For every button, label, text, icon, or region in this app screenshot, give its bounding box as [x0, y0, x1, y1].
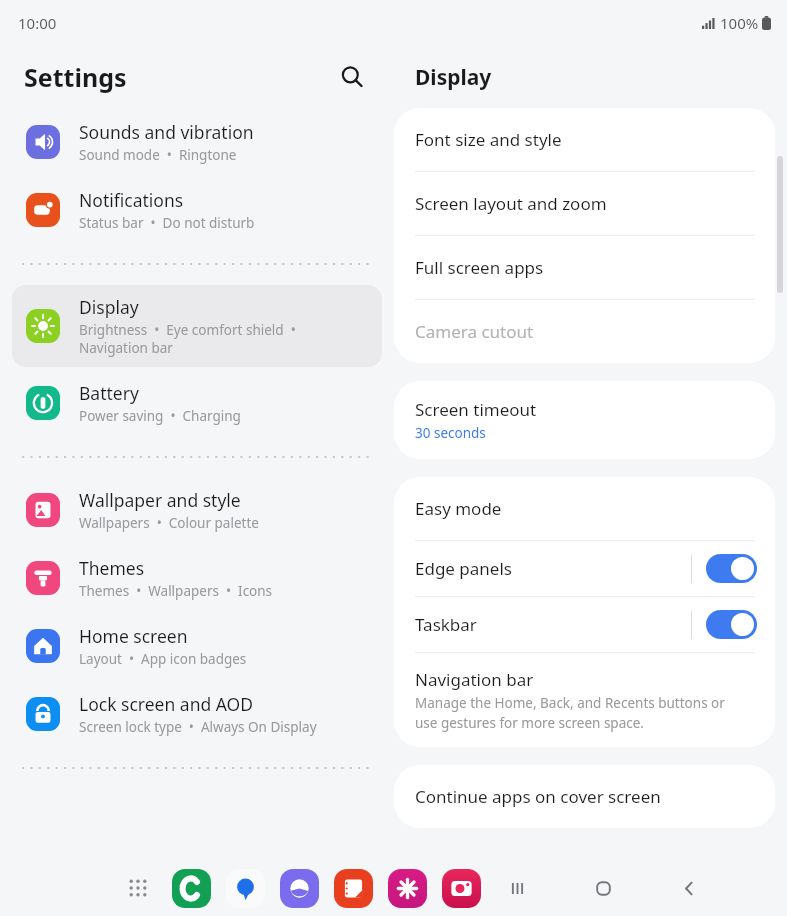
staticText: Battery: [79, 381, 139, 405]
staticText: Screen lock type • Always On Display: [79, 718, 317, 736]
staticText: Screen layout and zoom: [415, 192, 607, 215]
button[interactable]: Continue apps on cover screen: [394, 765, 775, 828]
button[interactable]: Camera: [442, 869, 481, 908]
staticText: Power saving • Charging: [79, 407, 241, 425]
staticText: Brightness • Eye comfort shield • Naviga…: [79, 321, 296, 357]
staticText: Navigation bar: [415, 668, 534, 691]
staticText: Edge panels: [415, 557, 691, 580]
button[interactable]: Edge panels toggle: [706, 554, 757, 583]
button[interactable]: Recents: [495, 866, 539, 910]
button[interactable]: Screen layout and zoom: [394, 172, 775, 235]
staticText: Home screen: [79, 624, 188, 648]
button[interactable]: Apps: [118, 868, 158, 908]
button[interactable]: Search: [332, 57, 372, 97]
button[interactable]: Taskbar: [394, 597, 775, 652]
button[interactable]: Taskbar toggle: [706, 610, 757, 639]
staticText: Sounds and vibration: [79, 120, 254, 144]
button[interactable]: Notes: [334, 869, 373, 908]
staticText: Status bar • Do not disturb: [79, 214, 255, 232]
button[interactable]: Navigation bar: [394, 653, 775, 747]
button[interactable]: Easy mode: [394, 477, 775, 540]
staticText: Taskbar: [415, 613, 691, 636]
button[interactable]: Home screen: [12, 614, 382, 678]
staticText: Full screen apps: [415, 256, 544, 279]
staticText: Themes: [79, 556, 145, 580]
staticText: Manage the Home, Back, and Recents butto…: [415, 694, 725, 732]
button[interactable]: Internet: [280, 869, 319, 908]
staticText: Layout • App icon badges: [79, 650, 247, 668]
button[interactable]: Sounds and vibration: [12, 110, 382, 174]
staticText: Sound mode • Ringtone: [79, 146, 237, 164]
button[interactable]: Edge panels: [394, 541, 775, 596]
button[interactable]: Back: [667, 866, 711, 910]
button[interactable]: Home: [581, 866, 625, 910]
staticText: Wallpaper and style: [79, 488, 241, 512]
button[interactable]: Display: [12, 285, 382, 367]
button[interactable]: Battery: [12, 371, 382, 435]
staticText: Lock screen and AOD: [79, 692, 254, 716]
staticText: Display: [415, 63, 492, 92]
staticText: 10:00: [18, 13, 57, 33]
button[interactable]: Full screen apps: [394, 236, 775, 299]
staticText: Notifications: [79, 188, 184, 212]
staticText: Themes • Wallpapers • Icons: [79, 582, 273, 600]
staticText: Settings: [24, 60, 127, 94]
button[interactable]: Font size and style: [394, 108, 775, 171]
button[interactable]: Camera cutout: [394, 300, 775, 363]
staticText: Font size and style: [415, 128, 562, 151]
button[interactable]: Gallery: [388, 869, 427, 908]
button[interactable]: Notifications: [12, 178, 382, 242]
staticText: 100%: [720, 13, 759, 33]
button[interactable]: Screen timeout: [394, 381, 775, 459]
staticText: Camera cutout: [415, 320, 534, 343]
button[interactable]: Phone: [172, 869, 211, 908]
staticText: 30 seconds: [415, 424, 486, 442]
staticText: Continue apps on cover screen: [415, 785, 661, 808]
button[interactable]: Wallpaper and style: [12, 478, 382, 542]
staticText: Display: [79, 295, 139, 319]
button[interactable]: Messages: [226, 869, 265, 908]
staticText: Screen timeout: [415, 398, 537, 421]
button[interactable]: Themes: [12, 546, 382, 610]
staticText: Easy mode: [415, 497, 502, 520]
staticText: Wallpapers • Colour palette: [79, 514, 259, 532]
button[interactable]: Lock screen and AOD: [12, 682, 382, 746]
